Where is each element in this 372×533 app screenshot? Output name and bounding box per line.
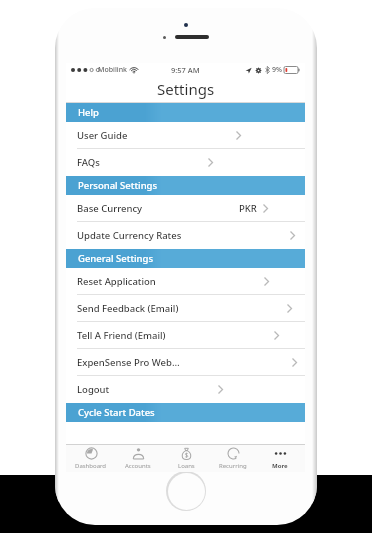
button[interactable]: Send Feedback (Email) <box>66 295 305 322</box>
staticText: More <box>272 462 288 470</box>
button[interactable]: Loans <box>164 444 208 472</box>
staticText: Cycle Start Dates <box>78 406 155 419</box>
staticText: Mobilink <box>98 65 128 75</box>
staticText: ExpenSense Pro Websi... <box>77 356 184 369</box>
button[interactable]: Accounts <box>116 444 160 472</box>
staticText: PKR <box>239 202 257 215</box>
button[interactable]: Update Currency Rates <box>66 222 305 249</box>
staticText: 9:57 AM <box>171 65 200 75</box>
staticText: Loans <box>178 462 195 470</box>
staticText: Tell A Friend (Email) <box>77 329 166 342</box>
staticText: Send Feedback (Email) <box>77 302 179 315</box>
button[interactable]: FAQs <box>66 149 305 176</box>
staticText: Help <box>78 106 100 119</box>
staticText: Recurring <box>219 462 247 470</box>
staticText: Logout <box>77 383 110 396</box>
button[interactable]: Recurring <box>211 444 255 472</box>
button[interactable]: Logout <box>66 376 305 403</box>
button[interactable]: User Guide <box>66 122 305 149</box>
button[interactable]: Reset Application <box>66 268 305 295</box>
staticText: 9% <box>272 65 282 75</box>
staticText: Settings <box>157 79 215 99</box>
staticText: Dashboard <box>75 462 107 470</box>
button[interactable]: Tell A Friend (Email) <box>66 322 305 349</box>
staticText: User Guide <box>77 129 128 142</box>
staticText: Update Currency Rates <box>77 229 182 242</box>
staticText: Accounts <box>125 462 151 470</box>
staticText: Personal Settings <box>78 179 158 192</box>
button[interactable]: More <box>258 444 302 472</box>
button[interactable]: Base Currency <box>66 195 305 222</box>
button[interactable]: Dashboard <box>69 444 113 472</box>
staticText: General Settings <box>78 252 154 265</box>
button[interactable]: ExpenSense Pro Websi... <box>66 349 305 376</box>
staticText: FAQs <box>77 156 100 169</box>
staticText: Base Currency <box>77 202 143 215</box>
staticText: Reset Application <box>77 275 156 288</box>
